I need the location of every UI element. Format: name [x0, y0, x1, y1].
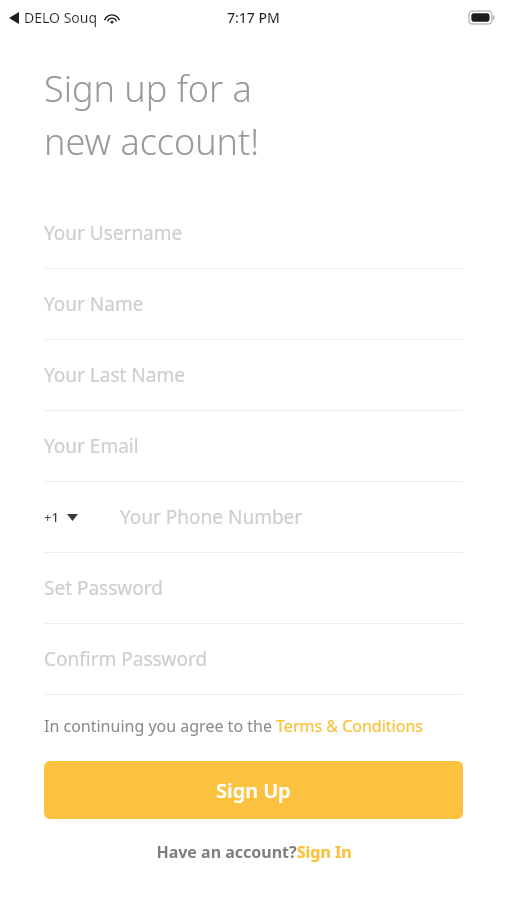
staticText: Sign Up — [216, 777, 291, 804]
staticText: Your Last Name — [44, 362, 185, 388]
staticText: +1 — [44, 508, 59, 526]
button[interactable]: Sign Up — [44, 761, 463, 819]
button[interactable]: Have an account?Sign In — [44, 841, 463, 863]
button[interactable]: Your Email — [44, 411, 463, 482]
staticText: 7:17 PM — [227, 8, 280, 27]
button[interactable]: Your Username — [44, 198, 463, 269]
button[interactable]: Confirm Password — [44, 624, 463, 695]
staticText: In continuing you agree to the Terms & C… — [44, 715, 423, 737]
button[interactable]: +1 — [44, 482, 463, 553]
button[interactable]: Your Last Name — [44, 340, 463, 411]
button[interactable]: In continuing you agree to the Terms & C… — [44, 715, 463, 737]
staticText: DELO Souq — [24, 8, 98, 27]
staticText: Your Username — [44, 220, 183, 246]
staticText: Have an account?Sign In — [156, 841, 352, 863]
staticText: Your Name — [44, 291, 144, 317]
staticText: Set Password — [44, 575, 163, 601]
staticText: Your Email — [44, 433, 139, 459]
button[interactable]: Your Name — [44, 269, 463, 340]
staticText: Sign up for a — [44, 64, 252, 113]
staticText: Confirm Password — [44, 646, 208, 672]
staticText: new account! — [44, 117, 260, 166]
staticText: Your Phone Number — [120, 504, 303, 530]
button[interactable]: Set Password — [44, 553, 463, 624]
